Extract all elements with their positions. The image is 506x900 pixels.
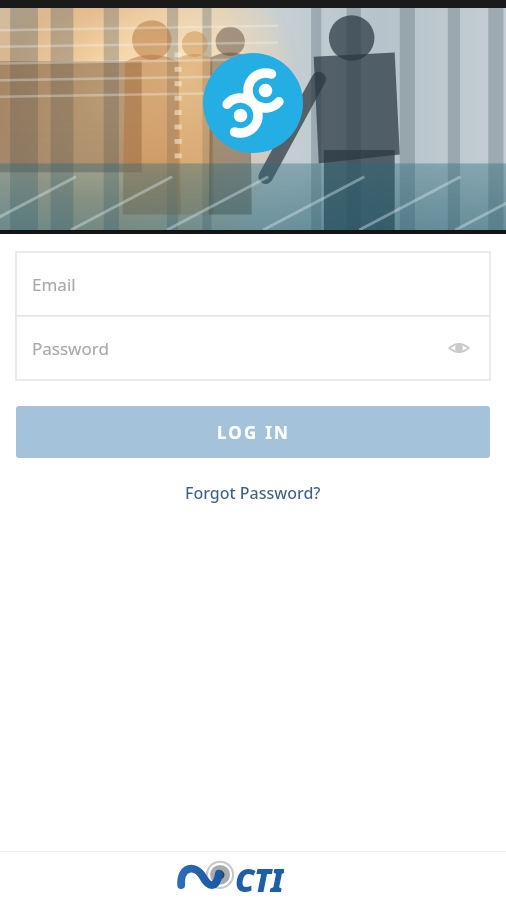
staticText: Password xyxy=(32,337,444,360)
button[interactable]: Forgot Password? xyxy=(173,478,333,508)
button[interactable]: Show password xyxy=(444,333,474,363)
button[interactable]: Email xyxy=(16,252,490,316)
other: CTI logo xyxy=(179,859,327,893)
staticText: Forgot Password? xyxy=(185,482,321,504)
staticText: Email xyxy=(32,273,474,296)
staticText: LOG IN xyxy=(217,421,290,444)
button[interactable]: Password xyxy=(16,316,490,380)
staticText: CTI xyxy=(235,859,284,893)
button[interactable]: LOG IN xyxy=(16,406,490,458)
